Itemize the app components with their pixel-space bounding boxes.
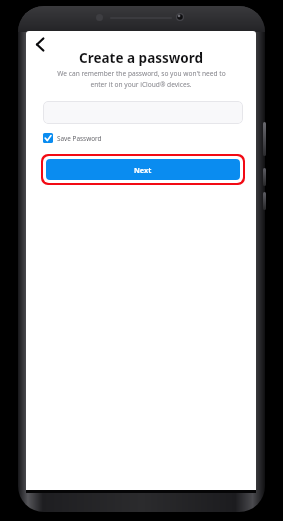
- button[interactable]: Password field: [43, 101, 243, 124]
- staticText: enter it on your iCloud® devices.: [90, 80, 192, 89]
- button[interactable]: Save Password: [43, 131, 102, 145]
- staticText: Create a password: [79, 49, 204, 67]
- button[interactable]: Next: [46, 159, 240, 180]
- staticText: We can remember the password, so you won…: [57, 69, 226, 78]
- staticText: Save Password: [57, 134, 102, 143]
- button[interactable]: Back: [27, 31, 53, 57]
- staticText: Next: [134, 165, 152, 175]
